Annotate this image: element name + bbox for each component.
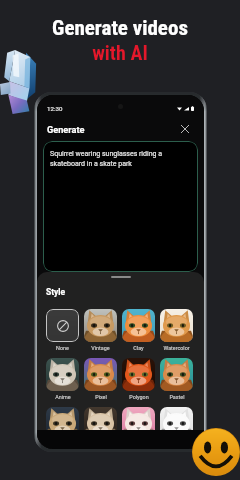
button[interactable] (160, 407, 193, 440)
staticText: Pixel (95, 394, 107, 400)
button[interactable] (84, 407, 117, 440)
staticText: None (56, 345, 69, 351)
button[interactable]: None (46, 309, 79, 351)
staticText: Generate videos (52, 16, 188, 41)
button[interactable]: Squirrel wearing sunglasses riding a ska… (43, 141, 198, 272)
button[interactable] (122, 407, 155, 440)
button[interactable]: Pixel (84, 358, 117, 400)
button[interactable]: Anime (46, 358, 79, 400)
staticText: with AI (92, 41, 148, 64)
button[interactable]: Clay (122, 309, 155, 351)
button[interactable]: Polygon (122, 358, 155, 400)
staticText: Polygon (129, 394, 149, 400)
staticText: Anime (55, 394, 71, 400)
staticText: Style (46, 287, 66, 297)
staticText: Squirrel wearing sunglasses riding a ska… (50, 150, 185, 167)
button[interactable]: Vintage (84, 309, 117, 351)
button[interactable] (46, 407, 79, 440)
staticText: Pastel (169, 394, 185, 400)
button[interactable]: Generate (47, 124, 85, 135)
staticText: Watercolor (163, 345, 190, 351)
staticText: Vintage (91, 345, 110, 351)
staticText: Clay (133, 345, 144, 351)
staticText: 12:30 (47, 105, 63, 112)
button[interactable]: Pastel (160, 358, 193, 400)
button[interactable]: Close (177, 121, 193, 137)
button[interactable]: Watercolor (160, 309, 193, 351)
